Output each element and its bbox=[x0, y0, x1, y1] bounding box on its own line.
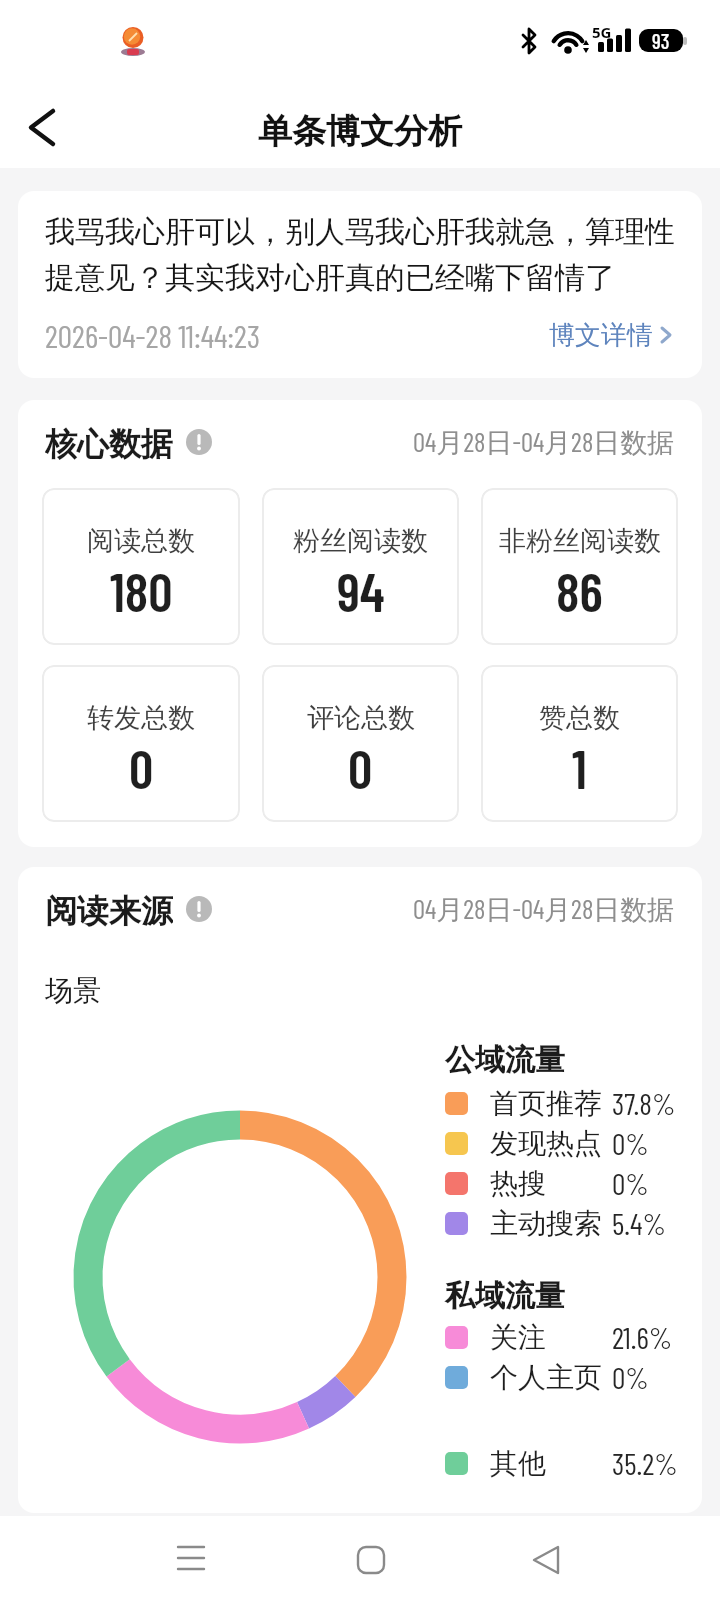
staticText: 热搜 bbox=[490, 1166, 546, 1201]
button[interactable] bbox=[323, 1516, 419, 1604]
staticText: 0 bbox=[129, 735, 154, 800]
staticText: 单条博文分析 bbox=[258, 110, 462, 153]
button[interactable]: 评论总数 bbox=[262, 665, 459, 822]
staticText: 私域流量 bbox=[445, 1277, 565, 1315]
staticText: 粉丝阅读数 bbox=[293, 524, 428, 558]
staticText: 04月28日-04月28日数据 bbox=[413, 425, 675, 460]
staticText: 阅读来源 bbox=[45, 891, 173, 927]
button[interactable]: 热搜 bbox=[445, 1163, 695, 1203]
staticText: 1 bbox=[572, 735, 587, 800]
staticText: 94 bbox=[337, 558, 385, 623]
button[interactable]: 赞总数 bbox=[481, 665, 678, 822]
button[interactable]: 非粉丝阅读数 bbox=[481, 488, 678, 645]
staticText: 0% bbox=[612, 1359, 649, 1395]
staticText: 关注 bbox=[490, 1320, 546, 1355]
staticText: 首页推荐 bbox=[490, 1086, 602, 1121]
staticText: 公域流量 bbox=[445, 1041, 565, 1079]
staticText: 180 bbox=[110, 558, 173, 623]
staticText: 0% bbox=[612, 1165, 649, 1201]
staticText: 主动搜索 bbox=[490, 1206, 602, 1241]
button[interactable] bbox=[498, 1516, 594, 1604]
staticText: 个人主页 bbox=[490, 1360, 602, 1395]
button[interactable]: 其他 bbox=[445, 1443, 695, 1483]
staticText: 93 bbox=[652, 28, 670, 52]
button[interactable]: 关注 bbox=[445, 1317, 695, 1357]
button[interactable]: 转发总数 bbox=[42, 665, 240, 822]
button[interactable]: 博文详情 bbox=[549, 315, 675, 355]
button[interactable]: 阅读总数 bbox=[42, 488, 240, 645]
staticText: 我骂我心肝可以，别人骂我心肝我就急，算理性提意见？其实我对心肝真的已经嘴下留情了 bbox=[45, 213, 675, 297]
staticText: 场景 bbox=[45, 973, 101, 1008]
staticText: 21.6% bbox=[612, 1319, 673, 1355]
staticText: 评论总数 bbox=[307, 701, 415, 735]
staticText: 转发总数 bbox=[87, 701, 195, 735]
staticText: 0 bbox=[348, 735, 373, 800]
staticText: 其他 bbox=[490, 1446, 546, 1481]
staticText: 35.2% bbox=[612, 1445, 678, 1481]
staticText: 2026-04-28 11:44:23 bbox=[45, 316, 261, 354]
button[interactable] bbox=[12, 99, 68, 155]
staticText: 86 bbox=[556, 558, 603, 623]
staticText: 5.4% bbox=[612, 1205, 666, 1241]
button[interactable]: 发现热点 bbox=[445, 1123, 695, 1163]
button[interactable]: 主动搜索 bbox=[445, 1203, 695, 1243]
staticText: 5G bbox=[592, 22, 612, 42]
staticText: 发现热点 bbox=[490, 1126, 602, 1161]
button[interactable]: 首页推荐 bbox=[445, 1083, 695, 1123]
staticText: 04月28日-04月28日数据 bbox=[413, 892, 675, 927]
button[interactable] bbox=[143, 1516, 239, 1604]
button[interactable]: 粉丝阅读数 bbox=[262, 488, 459, 645]
staticText: 博文详情 bbox=[549, 319, 653, 352]
staticText: 非粉丝阅读数 bbox=[499, 524, 661, 558]
staticText: 赞总数 bbox=[539, 701, 620, 735]
staticText: 阅读总数 bbox=[87, 524, 195, 558]
staticText: 0% bbox=[612, 1125, 649, 1161]
staticText: 核心数据 bbox=[45, 424, 173, 460]
button[interactable]: 个人主页 bbox=[445, 1357, 695, 1397]
staticText: 37.8% bbox=[612, 1085, 676, 1121]
